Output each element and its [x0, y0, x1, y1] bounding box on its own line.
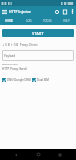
button[interactable]: HOME — [0, 17, 19, 25]
button[interactable]: Rotation lock — [53, 6, 61, 17]
staticText: Dual SIM — [37, 78, 49, 82]
button[interactable]: Navigation menu — [0, 6, 9, 17]
staticText: HELP — [63, 19, 70, 23]
button[interactable]: Recent apps — [54, 149, 66, 160]
staticText: Remote Proxy — [2, 62, 18, 65]
staticText: HTTP Proxy (host) — [2, 67, 27, 71]
button[interactable]: Logs — [61, 6, 69, 17]
staticText: TOOLS — [43, 19, 52, 23]
button[interactable]: DNS (Google DNS) — [2, 77, 31, 83]
button[interactable]: Dual SIM — [32, 77, 49, 83]
staticText: HTTP Injector — [9, 9, 32, 14]
button[interactable]: Remote Proxy — [2, 62, 74, 71]
button[interactable]: Back — [10, 149, 22, 160]
staticText: ↓ 0 B ↑ 0 B Proxy: Direct — [2, 43, 38, 47]
staticText: Payload — [4, 54, 16, 58]
staticText: DNS (Google DNS) — [7, 78, 31, 82]
button[interactable]: TOOLS — [38, 17, 57, 25]
button[interactable]: Payload — [2, 50, 74, 61]
button[interactable]: START — [2, 29, 74, 37]
staticText: LOG — [26, 19, 32, 23]
button[interactable]: Home — [32, 149, 44, 160]
staticText: START — [32, 31, 44, 36]
button[interactable]: More options — [69, 6, 76, 17]
button[interactable]: HELP — [57, 17, 76, 25]
staticText: HOME — [5, 19, 14, 23]
button[interactable]: LOG — [19, 17, 38, 25]
